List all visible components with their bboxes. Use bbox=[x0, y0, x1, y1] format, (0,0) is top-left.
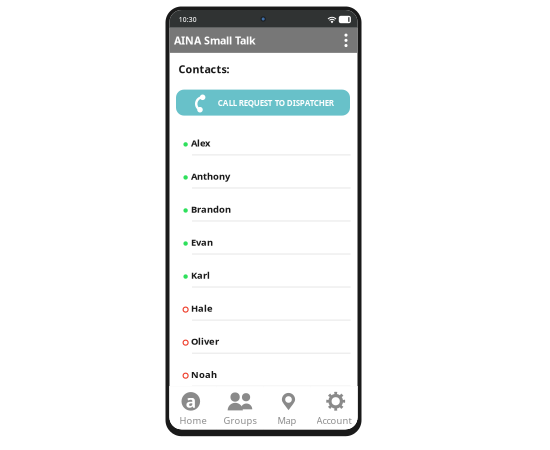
button[interactable]: Map bbox=[263, 386, 310, 429]
button[interactable]: a bbox=[169, 386, 216, 429]
staticText: 10:30 bbox=[179, 15, 197, 24]
button[interactable]: Hale bbox=[183, 293, 351, 326]
button[interactable]: Alex bbox=[183, 128, 351, 161]
staticText: Anthony bbox=[191, 170, 230, 182]
staticText: Contacts: bbox=[178, 62, 229, 76]
staticText: AINA Small Talk bbox=[174, 33, 256, 47]
staticText: Home bbox=[179, 414, 206, 427]
staticText: Groups bbox=[223, 414, 256, 427]
button[interactable]: Groups bbox=[216, 386, 263, 429]
button[interactable]: Oliver bbox=[183, 326, 351, 359]
staticText: CALL REQUEST TO DISPATCHER bbox=[218, 97, 334, 108]
button[interactable]: CALL REQUEST TO DISPATCHER bbox=[176, 90, 350, 116]
staticText: Noah bbox=[191, 368, 217, 380]
staticText: a bbox=[186, 389, 196, 412]
button[interactable]: Anthony bbox=[183, 161, 351, 194]
staticText: Alex bbox=[191, 137, 210, 149]
button[interactable]: Noah bbox=[183, 359, 351, 392]
staticText: Oliver bbox=[191, 335, 219, 347]
staticText: Hale bbox=[191, 302, 213, 314]
staticText: Brandon bbox=[191, 203, 231, 215]
button[interactable]: Evan bbox=[183, 227, 351, 260]
button[interactable]: Brandon bbox=[183, 194, 351, 227]
button[interactable]: More options bbox=[337, 28, 355, 53]
staticText: Evan bbox=[191, 236, 213, 248]
button[interactable]: Account bbox=[310, 386, 357, 429]
button[interactable]: Karl bbox=[183, 260, 351, 293]
staticText: Account bbox=[316, 414, 351, 427]
staticText: Karl bbox=[191, 269, 210, 281]
staticText: Map bbox=[277, 414, 296, 427]
